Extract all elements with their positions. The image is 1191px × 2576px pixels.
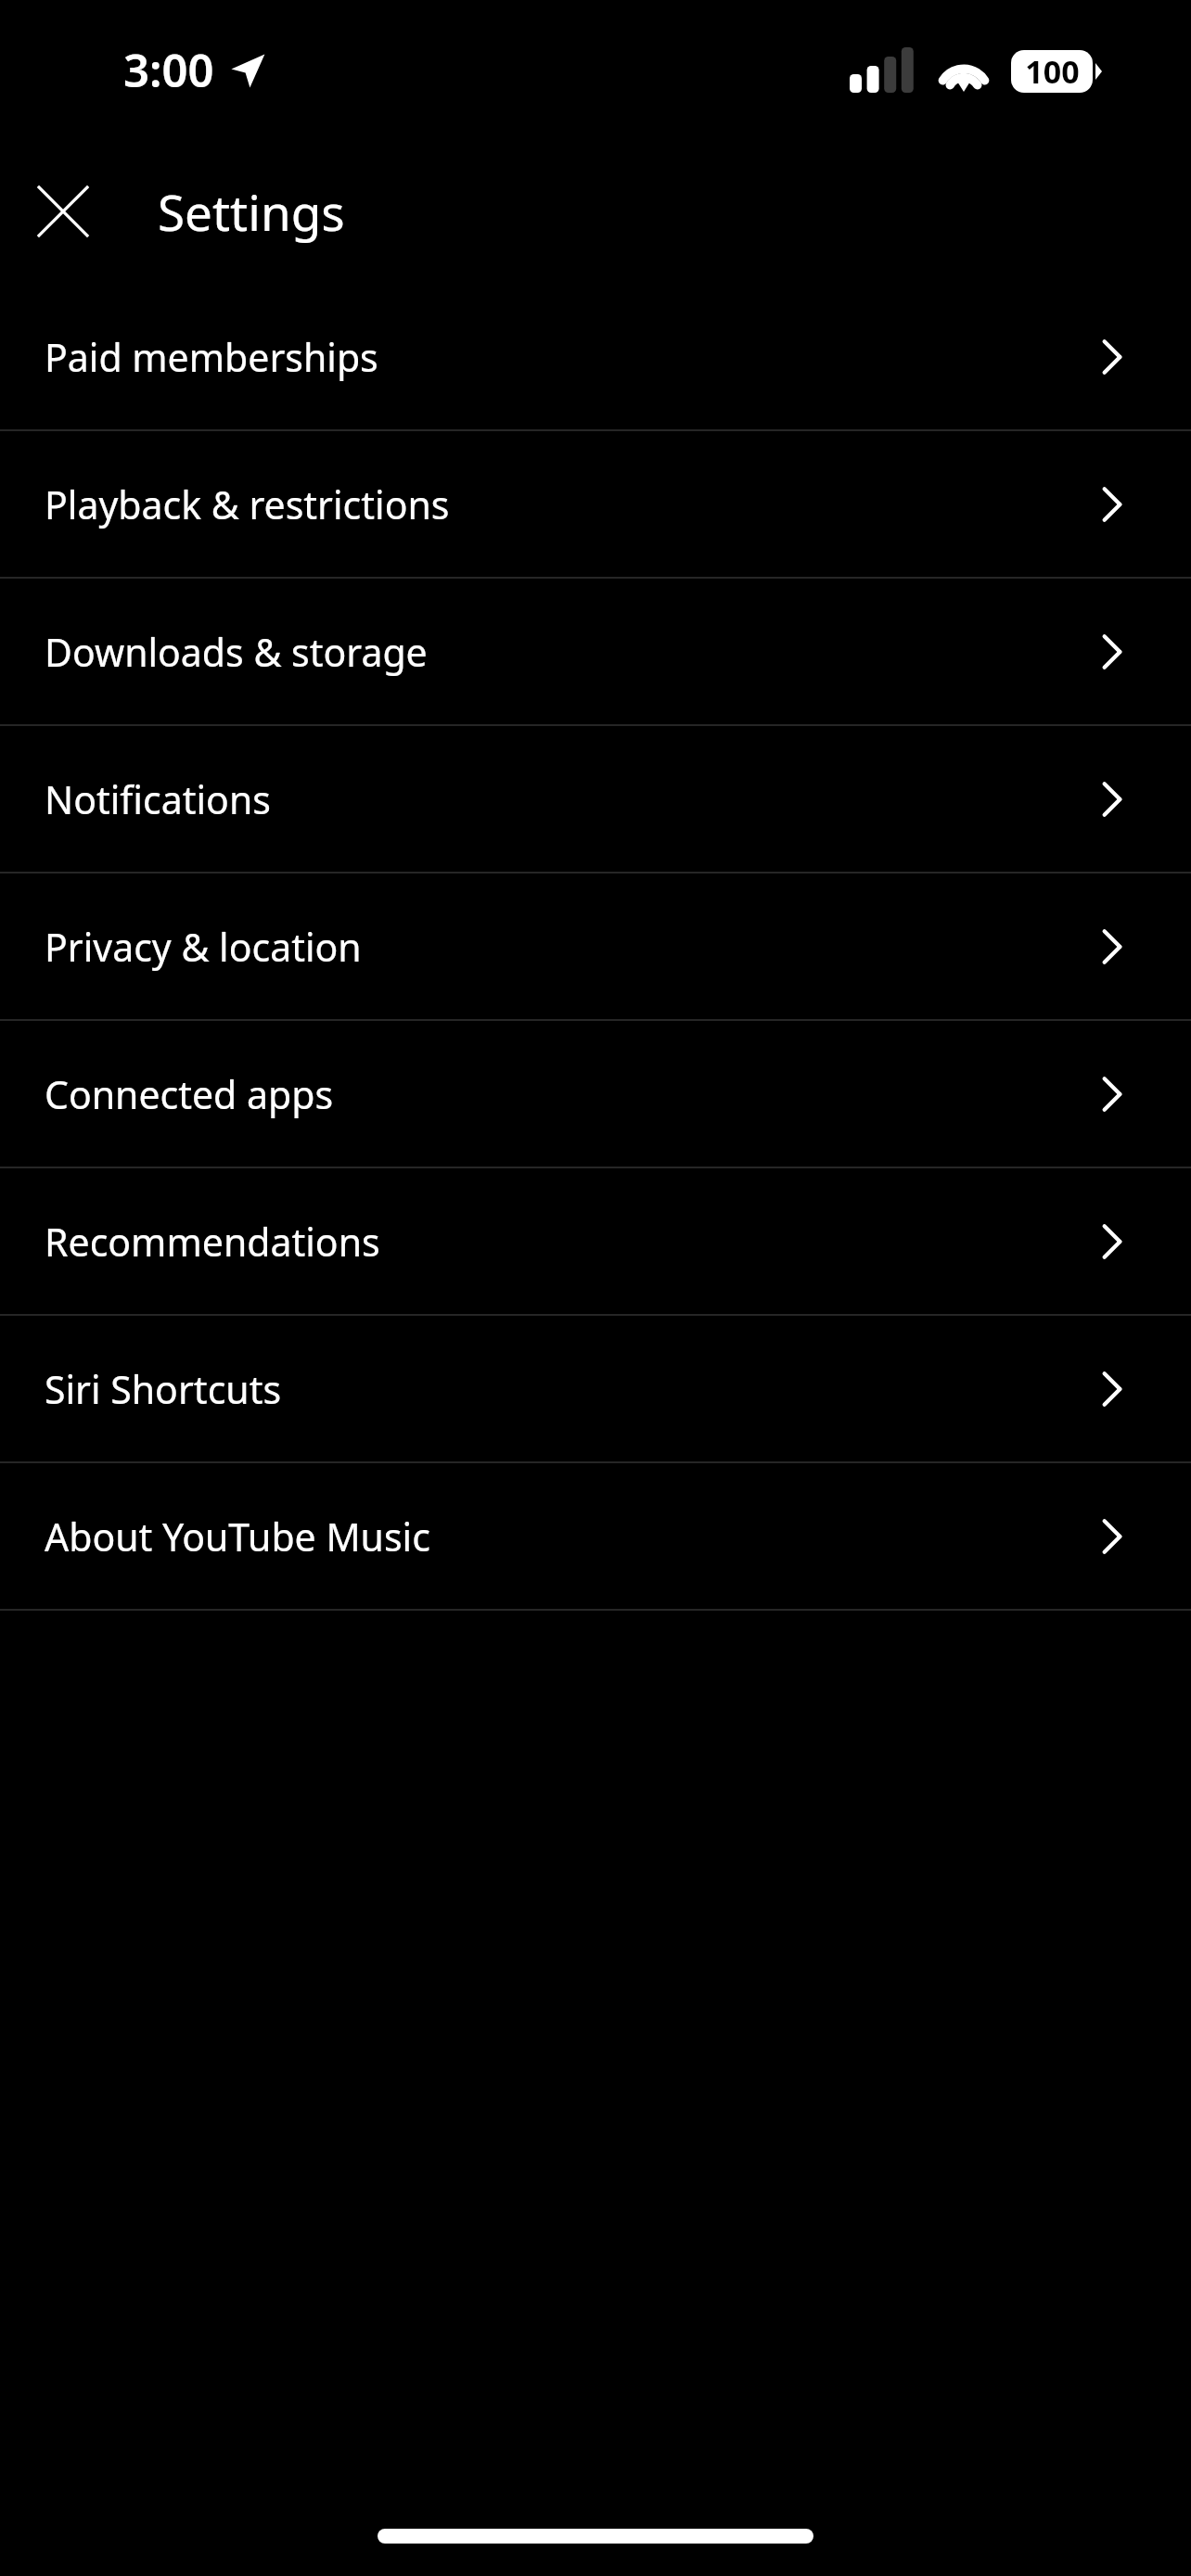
staticText: Settings [158,178,345,245]
staticText: Paid memberships [45,331,378,383]
button[interactable]: Connected apps [0,1021,1191,1167]
staticText: Downloads & storage [45,626,428,678]
staticText: Siri Shortcuts [45,1363,282,1415]
staticText: Playback & restrictions [45,478,450,530]
staticText: Privacy & location [45,921,362,973]
button[interactable]: Playback & restrictions [0,431,1191,577]
button[interactable]: Siri Shortcuts [0,1316,1191,1461]
button[interactable]: Recommendations [0,1168,1191,1314]
staticText: 100 [1025,50,1080,93]
button[interactable]: Paid memberships [0,284,1191,429]
staticText: Notifications [45,773,271,825]
staticText: About YouTube Music [45,1511,430,1562]
button[interactable]: Notifications [0,726,1191,872]
staticText: Connected apps [45,1068,334,1120]
button[interactable]: About YouTube Music [0,1463,1191,1609]
staticText: 3:00 [123,39,214,101]
staticText: Recommendations [45,1216,380,1268]
button[interactable]: Downloads & storage [0,579,1191,724]
button[interactable]: Close [20,169,106,254]
button[interactable]: Privacy & location [0,874,1191,1019]
